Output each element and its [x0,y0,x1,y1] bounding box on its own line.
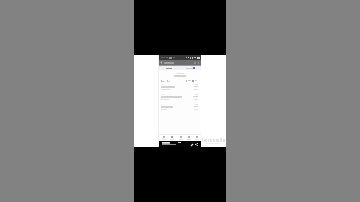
button[interactable]: Tab 2 [168,136,175,141]
button[interactable]: Share [195,143,198,146]
button[interactable] [186,67,195,69]
button[interactable]: Tab 1 [160,136,167,141]
button[interactable]: Sort [167,80,170,82]
button[interactable] [159,103,201,113]
button[interactable]: Edit [190,143,193,146]
button[interactable] [159,83,201,93]
button[interactable]: Tab 3 [177,136,184,141]
button[interactable]: Back [159,60,201,65]
button[interactable]: Tab 4 [185,136,192,141]
button[interactable]: Back [160,61,163,64]
button[interactable]: Tab 5 [193,136,200,141]
button[interactable]: Search [193,61,196,64]
button[interactable] [159,93,201,103]
button[interactable]: More options [197,61,200,64]
button[interactable]: Filter [161,80,165,82]
